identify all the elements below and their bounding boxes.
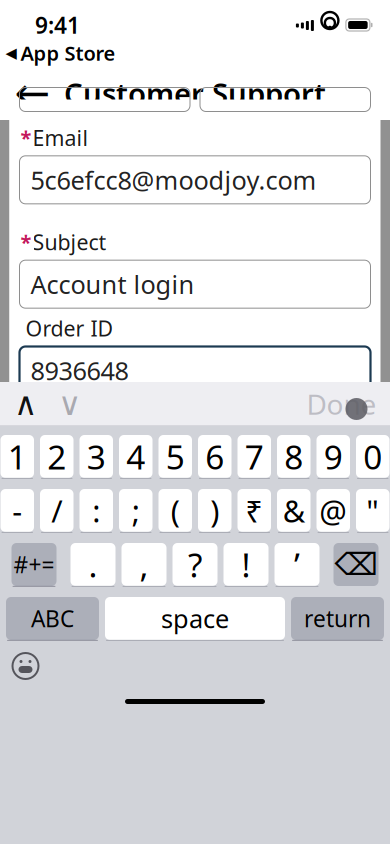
button[interactable]: 0	[356, 435, 389, 478]
staticText: /	[51, 490, 62, 531]
button[interactable]: 5	[158, 435, 192, 478]
button[interactable]: Previous field	[3, 384, 47, 424]
button[interactable]: ’	[274, 543, 319, 586]
staticText: )	[210, 490, 219, 531]
button[interactable]: return	[291, 597, 384, 640]
staticText: 4	[126, 434, 145, 479]
button[interactable]: 5c6efcc8@moodjoy.com	[9, 156, 380, 204]
staticText: 5	[166, 434, 185, 479]
staticText: Email	[32, 123, 88, 152]
button[interactable]: Done	[306, 384, 390, 424]
staticText: !	[241, 542, 250, 587]
button[interactable]: &	[277, 489, 310, 532]
button[interactable]: 4	[119, 435, 152, 478]
button[interactable]: 7	[237, 435, 271, 478]
staticText: 7	[245, 434, 264, 479]
button[interactable]: Back	[5, 71, 59, 115]
staticText: @	[319, 490, 347, 531]
staticText: ₹	[245, 490, 263, 531]
staticText: Subject	[32, 228, 106, 256]
button[interactable]: space	[105, 597, 285, 640]
staticText: ;	[132, 490, 140, 531]
staticText: space	[161, 602, 229, 635]
button[interactable]: ;	[119, 489, 152, 532]
button[interactable]: .	[70, 543, 115, 586]
staticText: -	[12, 490, 22, 531]
button[interactable]: :	[79, 489, 113, 532]
button[interactable]: 8936648	[9, 346, 380, 394]
button[interactable]: ◀	[0, 40, 115, 66]
staticText: "	[366, 490, 379, 531]
button[interactable]: 3	[79, 435, 113, 478]
staticText: ?	[188, 542, 202, 587]
staticText: Done	[306, 385, 376, 423]
button[interactable]: #+=	[11, 543, 56, 586]
button[interactable]: @	[316, 489, 350, 532]
staticText: ◀	[5, 45, 16, 61]
button[interactable]: -	[0, 489, 34, 532]
staticText: :	[92, 490, 100, 531]
staticText: ∨	[58, 386, 81, 422]
staticText: #+=	[13, 549, 54, 579]
staticText: Customer Support	[64, 73, 326, 112]
staticText: 0	[363, 434, 382, 479]
staticText: Account login	[30, 267, 194, 301]
button[interactable]: ABC	[6, 597, 99, 640]
staticText: ’	[294, 542, 300, 587]
staticText: .	[88, 542, 97, 587]
staticText: App Store	[20, 40, 115, 66]
button[interactable]: 8	[277, 435, 310, 478]
staticText: ,	[139, 542, 148, 587]
staticText: *	[20, 229, 31, 255]
staticText: ∧	[14, 386, 37, 422]
staticText: (	[171, 490, 180, 531]
button[interactable]: Next field	[47, 384, 91, 424]
staticText: 3	[87, 434, 106, 479]
button[interactable]: ,	[121, 543, 166, 586]
button[interactable]: 2	[40, 435, 73, 478]
staticText: Order ID	[25, 314, 113, 342]
staticText: &	[283, 490, 305, 531]
button[interactable]: Delete	[333, 543, 378, 586]
button[interactable]: !	[223, 543, 268, 586]
staticText: ←	[14, 69, 50, 117]
staticText: 6	[205, 434, 224, 479]
button[interactable]: Emoji keyboard	[3, 648, 47, 684]
staticText: 5c6efcc8@moodjoy.com	[30, 163, 316, 197]
staticText: 9	[324, 434, 343, 479]
button[interactable]: ?	[172, 543, 217, 586]
button[interactable]: 1	[0, 435, 34, 478]
staticText: return	[304, 603, 371, 633]
staticText: 8936648	[30, 354, 128, 387]
staticText: 9:41	[35, 10, 80, 40]
staticText: ABC	[31, 603, 74, 633]
staticText: ⌫	[334, 547, 377, 582]
staticText: 8	[284, 434, 303, 479]
button[interactable]: )	[198, 489, 231, 532]
staticText: *	[20, 124, 31, 151]
button[interactable]: (	[158, 489, 192, 532]
button[interactable]: Account login	[9, 260, 380, 308]
staticText: 1	[8, 434, 27, 479]
button[interactable]: ₹	[237, 489, 271, 532]
button[interactable]: 6	[198, 435, 231, 478]
button[interactable]: "	[356, 489, 389, 532]
staticText: 2	[47, 434, 66, 479]
button[interactable]: 9	[316, 435, 350, 478]
button[interactable]: /	[40, 489, 73, 532]
